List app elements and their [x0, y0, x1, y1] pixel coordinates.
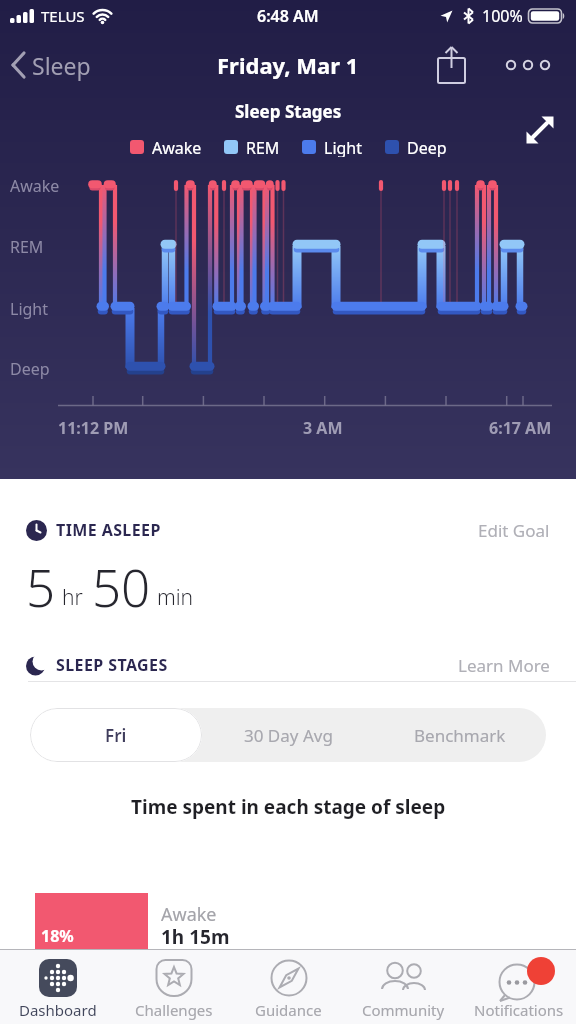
staticText: TELUS: [41, 6, 85, 26]
staticText: 3 AM: [303, 417, 343, 439]
button[interactable]: 30 Day Avg: [202, 708, 374, 762]
staticText: 5: [26, 552, 56, 621]
staticText: 1h 15m: [161, 924, 230, 950]
button[interactable]: Sleep: [10, 40, 91, 90]
button[interactable]: [433, 45, 471, 85]
button[interactable]: Benchmark: [374, 708, 546, 762]
staticText: 6:48 AM: [257, 5, 319, 27]
staticText: 50: [92, 552, 151, 621]
staticText: 11:12 PM: [58, 417, 129, 439]
button[interactable]: Fri: [30, 708, 202, 762]
staticText: Edit Goal: [478, 519, 550, 542]
staticText: Benchmark: [414, 724, 506, 747]
staticText: Light: [324, 137, 363, 157]
staticText: Sleep: [32, 50, 91, 81]
button[interactable]: [522, 112, 558, 148]
staticText: Community: [362, 1000, 445, 1020]
button[interactable]: Learn More: [458, 654, 550, 677]
staticText: Fri: [105, 724, 127, 747]
staticText: Deep: [407, 137, 447, 157]
staticText: REM: [10, 236, 44, 258]
staticText: SLEEP STAGES: [56, 654, 168, 676]
staticText: Awake: [10, 175, 60, 197]
staticText: hr: [62, 583, 83, 612]
staticText: Light: [10, 298, 49, 320]
staticText: Learn More: [458, 654, 550, 677]
button[interactable]: Community: [346, 950, 461, 1024]
staticText: Sleep Stages: [235, 100, 342, 123]
button[interactable]: Dashboard: [0, 950, 116, 1024]
staticText: REM: [246, 137, 280, 157]
staticText: Time spent in each stage of sleep: [131, 794, 446, 820]
staticText: Challenges: [135, 1000, 213, 1020]
button[interactable]: Edit Goal: [478, 519, 550, 542]
staticText: 30 Day Avg: [244, 724, 333, 747]
staticText: Deep: [10, 358, 50, 380]
staticText: TIME ASLEEP: [56, 519, 161, 541]
staticText: min: [157, 583, 194, 612]
staticText: Notifications: [474, 1000, 564, 1020]
button[interactable]: Challenges: [116, 950, 231, 1024]
staticText: Guidance: [255, 1000, 322, 1020]
staticText: 6:17 AM: [489, 417, 552, 439]
staticText: Friday, Mar 1: [217, 50, 359, 80]
staticText: Dashboard: [19, 1000, 97, 1020]
button[interactable]: [503, 56, 559, 74]
button[interactable]: Guidance: [231, 950, 346, 1024]
staticText: Awake: [161, 902, 217, 927]
staticText: 18%: [41, 925, 74, 947]
staticText: 100%: [482, 5, 523, 27]
button[interactable]: Notifications: [461, 950, 576, 1024]
staticText: Awake: [152, 137, 202, 157]
